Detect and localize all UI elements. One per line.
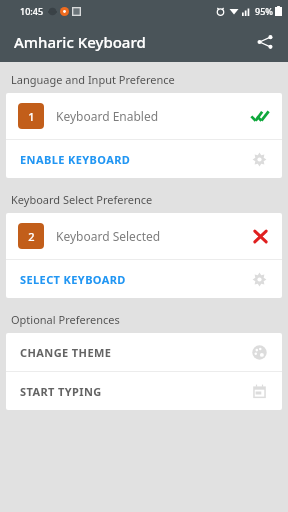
button[interactable]: SELECT KEYBOARD: [6, 260, 282, 298]
staticText: 2: [28, 229, 35, 244]
staticText: SELECT KEYBOARD: [20, 272, 126, 287]
button[interactable]: ENABLE KEYBOARD: [6, 140, 282, 178]
staticText: CHANGE THEME: [20, 345, 112, 360]
staticText: 10:45: [20, 5, 44, 17]
staticText: Keyboard Enabled: [56, 108, 159, 124]
staticText: Optional Preferences: [11, 312, 120, 327]
button[interactable]: 2: [6, 213, 282, 259]
staticText: 95%: [255, 5, 273, 17]
button[interactable]: START TYPING: [6, 372, 282, 410]
staticText: Keyboard Selected: [56, 228, 161, 244]
staticText: Keyboard Select Preference: [11, 192, 153, 207]
button[interactable]: Share: [248, 25, 282, 59]
button[interactable]: 1: [6, 93, 282, 139]
staticText: START TYPING: [20, 384, 102, 399]
staticText: Amharic Keyboard: [14, 32, 146, 52]
staticText: 1: [28, 109, 35, 124]
staticText: Language and Input Preference: [11, 72, 175, 87]
staticText: ENABLE KEYBOARD: [20, 152, 131, 167]
button[interactable]: CHANGE THEME: [6, 333, 282, 371]
